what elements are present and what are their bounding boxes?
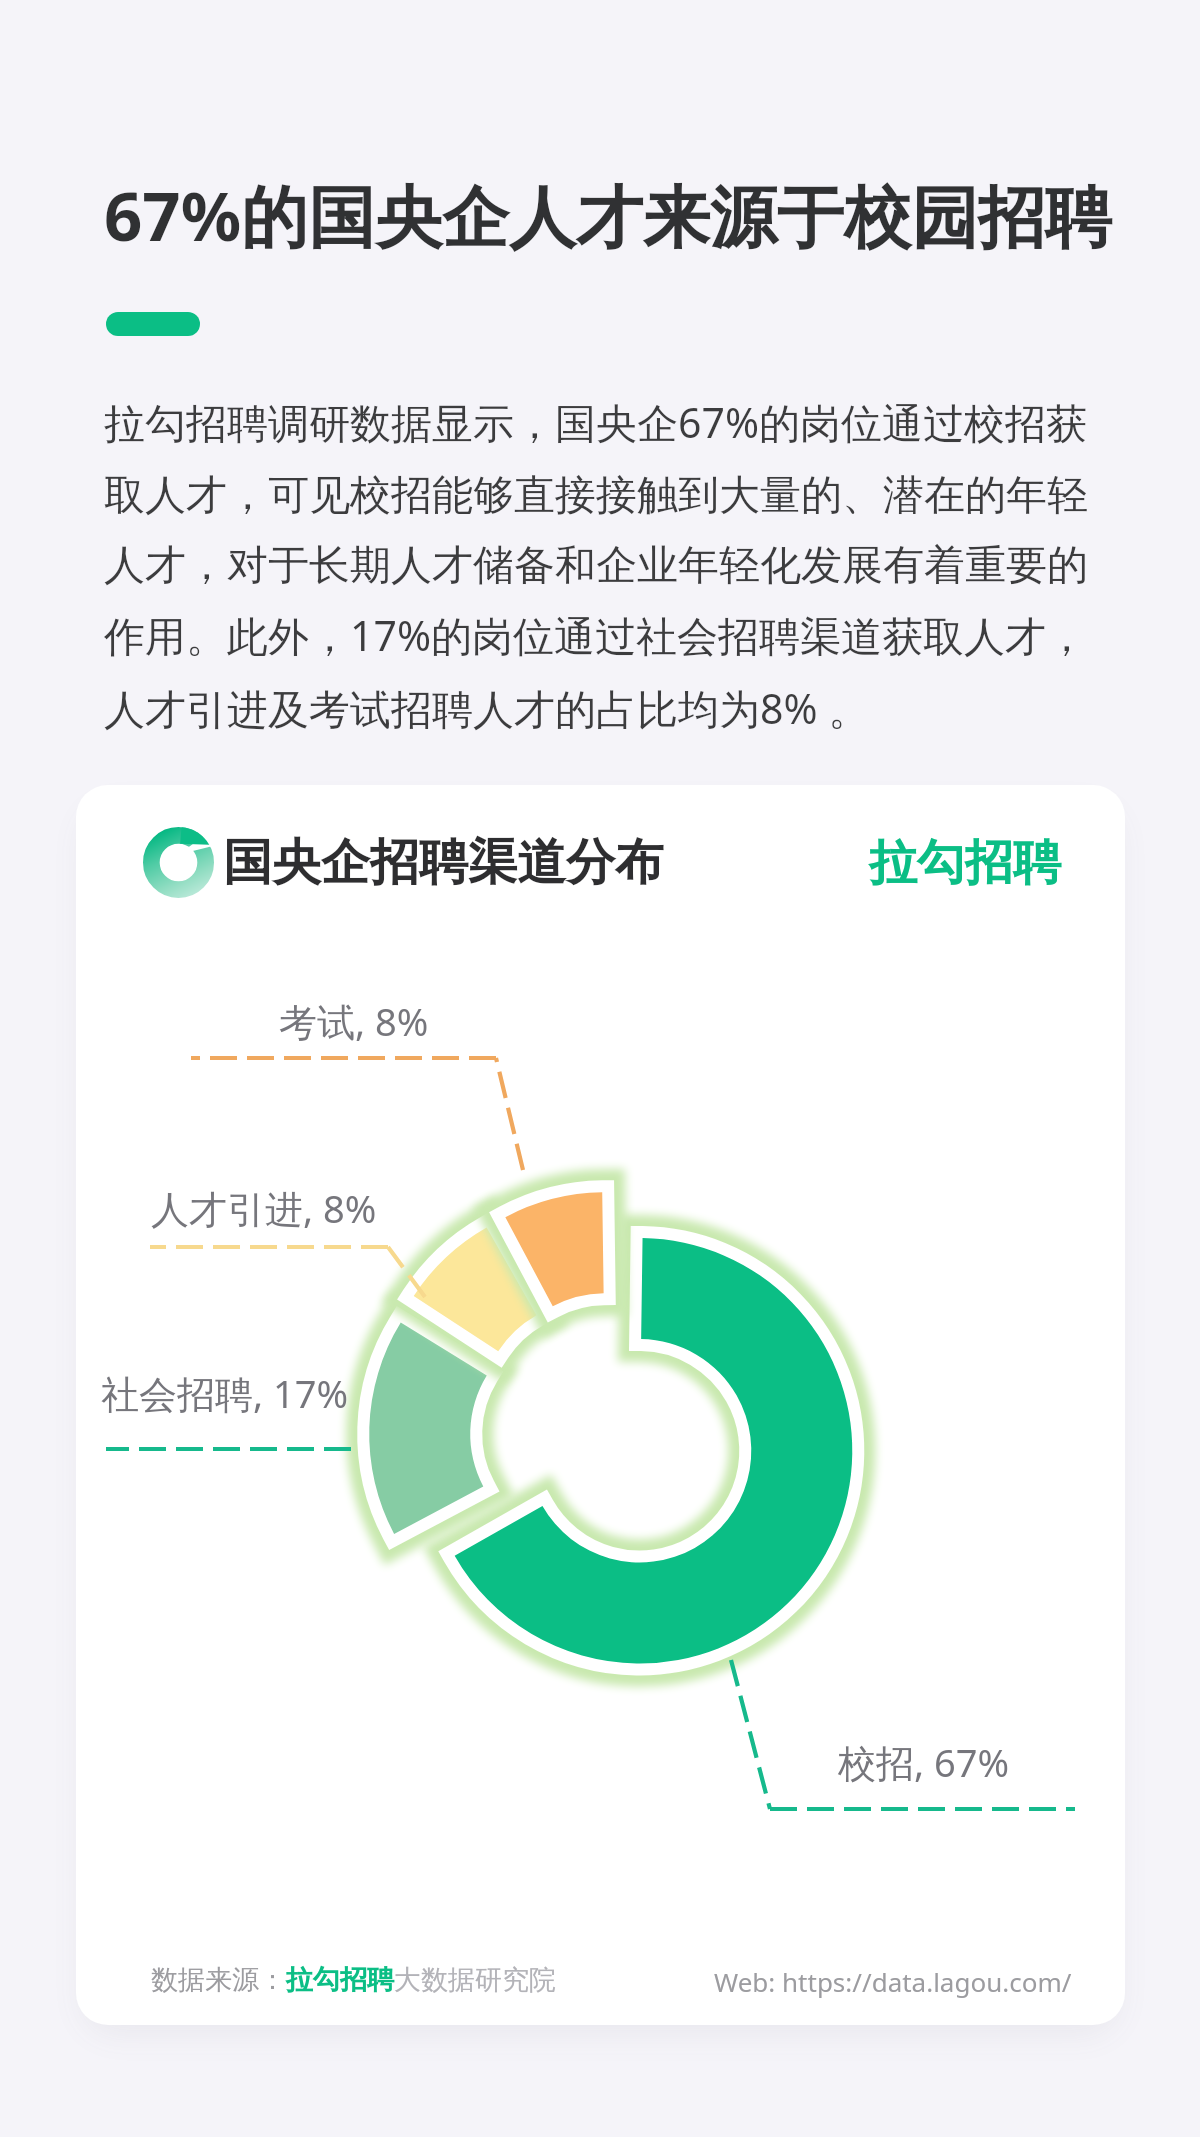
button[interactable]: Web: https://data.lagou.com/ <box>714 1964 1072 1999</box>
button[interactable]: 人才引进, 8% <box>151 1182 377 1234</box>
staticText: 67%的国央企人才来源于校园招聘 <box>104 169 1113 261</box>
staticText: 数据来源： <box>151 1963 286 1997</box>
other: Lagou logo <box>143 827 214 898</box>
button[interactable]: 社会招聘, 17% <box>101 1367 349 1419</box>
staticText: 拉勾招聘 <box>286 1963 394 1997</box>
button[interactable]: 考试, 8% <box>279 995 429 1047</box>
button[interactable]: Lagou logo <box>143 827 664 898</box>
staticText: 拉勾招聘调研数据显示，国央企67%的岗位通过校招获取人才，可见校招能够直接接触到… <box>104 394 1104 737</box>
button[interactable]: 拉勾招聘 <box>869 833 1061 893</box>
staticText: 国央企招聘渠道分布 <box>223 832 664 894</box>
staticText: 大数据研究院 <box>394 1963 556 1997</box>
button[interactable]: 数据来源： <box>151 1963 556 1997</box>
button[interactable]: 校招, 67% <box>838 1736 1010 1788</box>
